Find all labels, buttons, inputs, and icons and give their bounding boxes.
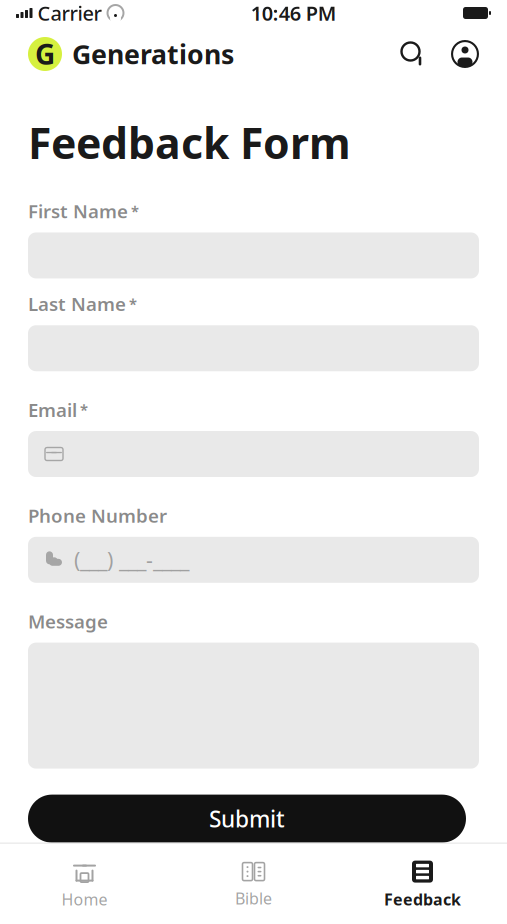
staticText: Generations <box>72 36 234 72</box>
button[interactable]: Submit <box>28 795 466 843</box>
button[interactable]: Feedback <box>338 852 507 918</box>
staticText: Last Name <box>28 291 126 316</box>
staticText: * <box>80 400 88 419</box>
staticText: 10:46 PM <box>251 0 337 26</box>
staticText: Submit <box>209 804 285 834</box>
button[interactable]: Home <box>0 852 169 918</box>
staticText: G <box>35 35 55 73</box>
staticText: Message <box>28 609 108 634</box>
button[interactable]: Bible <box>169 853 338 917</box>
staticText: First Name <box>28 199 128 223</box>
staticText: Phone Number <box>28 503 167 528</box>
button[interactable]: Search <box>399 40 427 68</box>
staticText: Email <box>28 397 77 422</box>
staticText: Feedback <box>384 889 461 910</box>
staticText: * <box>129 294 137 314</box>
button[interactable]: Account <box>451 40 479 68</box>
staticText: * <box>131 201 139 221</box>
staticText: Carrier <box>37 0 101 26</box>
staticText: (___) ___-____ <box>74 546 189 574</box>
staticText: Home <box>61 889 107 910</box>
staticText: Feedback Form <box>28 114 351 171</box>
button[interactable]: G <box>28 36 234 72</box>
staticText: Bible <box>235 888 272 909</box>
